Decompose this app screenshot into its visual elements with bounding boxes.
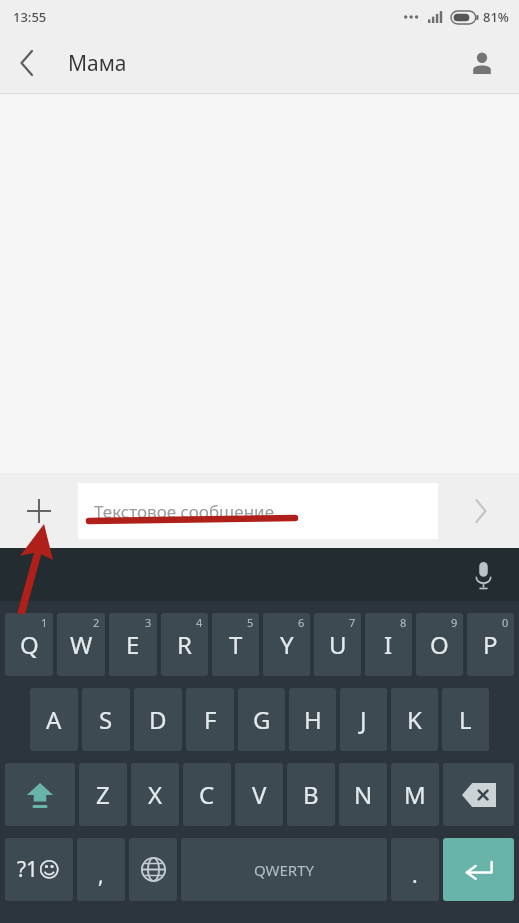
button[interactable]: J [340,688,387,751]
staticText: V [252,778,267,811]
staticText: 4 [196,615,203,630]
button[interactable]: Change language [129,838,177,901]
button[interactable]: G [238,688,285,751]
staticText: 7 [349,615,356,630]
staticText: T [229,628,243,661]
button[interactable]: Q [5,613,53,676]
staticText: 5 [247,615,254,630]
staticText: U [329,628,347,661]
button[interactable]: K [391,688,438,751]
button[interactable]: Space [181,838,387,901]
staticText: A [46,703,62,736]
button[interactable]: H [289,688,336,751]
button[interactable]: Attach [0,473,78,548]
staticText: E [126,628,140,661]
staticText: P [483,628,498,661]
button[interactable]: Voice input [461,553,505,597]
staticText: J [360,703,367,736]
button[interactable]: R [161,613,208,676]
button[interactable]: A [30,688,78,751]
staticText: 8 [400,615,407,630]
staticText: 2 [93,615,100,630]
button[interactable]: Contact details [459,40,505,86]
staticText: Текстовое сообщение [94,500,275,523]
staticText: . [412,861,418,890]
button[interactable]: Back [0,36,54,90]
staticText: M [404,778,426,811]
button[interactable]: I [365,613,412,676]
staticText: 13:55 [13,8,47,26]
staticText: , [98,861,104,890]
staticText: C [199,778,215,811]
button[interactable]: W [57,613,105,676]
button[interactable]: B [287,763,335,826]
staticText: F [204,703,217,736]
button[interactable]: P [467,613,514,676]
staticText: X [148,778,163,811]
staticText: ?1☺ [17,855,61,884]
staticText: 0 [502,615,509,630]
staticText: G [253,703,271,736]
staticText: Q [20,628,39,661]
staticText: R [177,628,192,661]
button[interactable]: Z [79,763,127,826]
staticText: 3 [145,615,152,630]
button[interactable]: C [183,763,231,826]
button[interactable]: V [235,763,283,826]
button[interactable]: S [82,688,130,751]
button[interactable]: Shift [5,763,75,826]
staticText: N [354,778,373,811]
button[interactable]: M [391,763,439,826]
button[interactable]: Enter [443,838,514,901]
button[interactable]: U [314,613,361,676]
staticText: QWERTY [254,860,315,880]
button[interactable]: O [416,613,463,676]
staticText: Мама [68,49,127,78]
button[interactable]: E [109,613,157,676]
staticText: S [99,703,113,736]
button[interactable]: T [212,613,259,676]
staticText: H [304,703,322,736]
button[interactable]: N [339,763,387,826]
staticText: B [303,778,319,811]
button[interactable]: Comma [77,838,125,901]
button[interactable]: F [186,688,234,751]
button[interactable]: L [442,688,489,751]
staticText: 6 [298,615,305,630]
button[interactable]: D [134,688,182,751]
staticText: 81% [483,8,509,26]
button[interactable]: Send [441,473,519,548]
button[interactable]: X [131,763,179,826]
staticText: W [70,628,93,661]
staticText: D [149,703,167,736]
button[interactable]: Backspace [443,763,514,826]
staticText: 1 [41,615,48,630]
staticText: O [430,628,449,661]
staticText: L [459,703,472,736]
staticText: 9 [451,615,458,630]
button[interactable]: Symbols and emoji [5,838,73,901]
button[interactable]: Текстовое сообщение [78,483,438,539]
button[interactable]: Y [263,613,310,676]
button[interactable]: Period [391,838,439,901]
staticText: Y [280,628,294,661]
staticText: K [407,703,422,736]
staticText: Z [96,778,110,811]
staticText: I [384,628,393,661]
